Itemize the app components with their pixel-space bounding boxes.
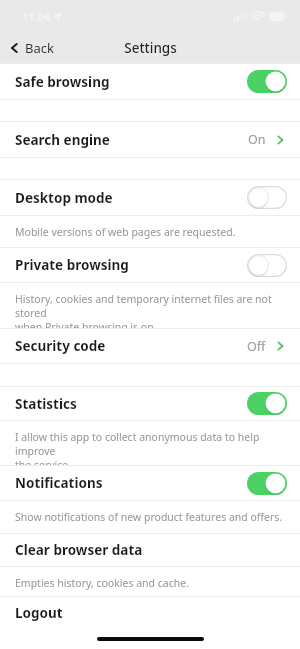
- button[interactable]: Back: [0, 32, 64, 63]
- staticText: Statistics: [15, 395, 247, 413]
- staticText: History, cookies and temporary internet …: [15, 292, 285, 328]
- staticText: Logout: [15, 604, 287, 622]
- staticText: Notifications: [15, 474, 247, 492]
- staticText: Private browsing: [15, 256, 247, 274]
- staticText: Mobile versions of web pages are request…: [15, 225, 236, 239]
- button[interactable]: Private browsing: [0, 248, 300, 282]
- staticText: Settings: [124, 39, 177, 57]
- button[interactable]: Search engine: [0, 122, 300, 157]
- button[interactable]: Desktop mode: [0, 180, 300, 215]
- staticText: Search engine: [15, 131, 248, 149]
- staticText: I allow this app to collect anonymous da…: [15, 430, 285, 465]
- button[interactable]: Security code: [0, 329, 300, 363]
- staticText: Off: [247, 338, 266, 355]
- button[interactable]: Notifications: [0, 466, 300, 500]
- staticText: Show notifications of new product featur…: [15, 510, 283, 524]
- button[interactable]: Clear browser data: [0, 534, 300, 566]
- staticText: Clear browser data: [15, 541, 287, 559]
- staticText: On: [248, 131, 266, 148]
- staticText: Safe browsing: [15, 73, 247, 91]
- button[interactable]: Logout: [0, 597, 300, 629]
- staticText: 11.04: [22, 9, 51, 24]
- staticText: Desktop mode: [15, 189, 247, 207]
- staticText: Back: [25, 39, 54, 57]
- button[interactable]: Safe browsing: [0, 64, 300, 99]
- staticText: Security code: [15, 337, 247, 355]
- staticText: Empties history, cookies and cache.: [15, 576, 189, 590]
- button[interactable]: Statistics: [0, 387, 300, 420]
